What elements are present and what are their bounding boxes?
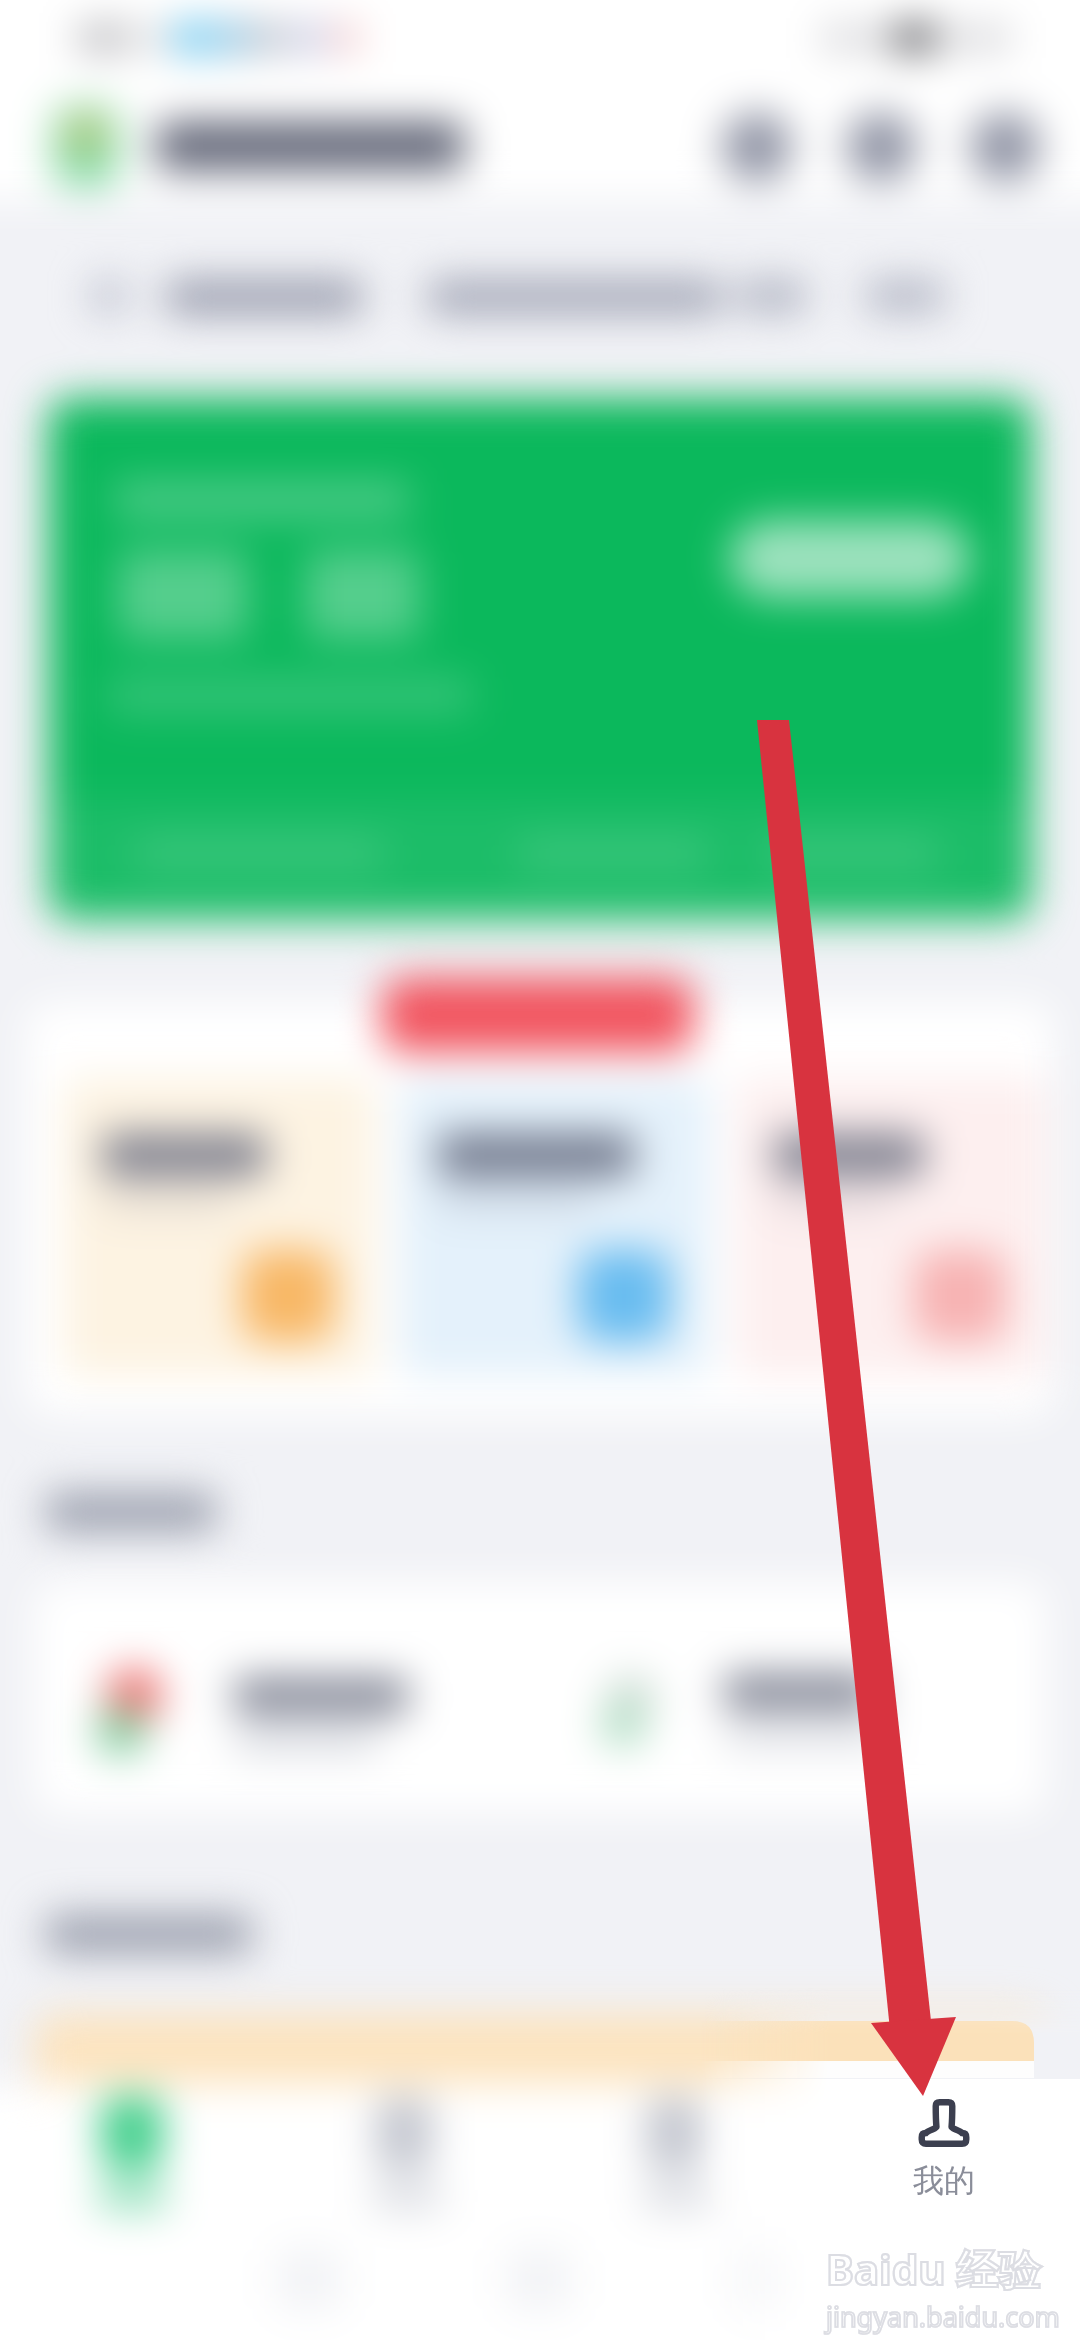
button[interactable]: 我的	[809, 2096, 1079, 2200]
button[interactable]: More	[970, 112, 1040, 182]
button[interactable]: Search	[722, 112, 792, 182]
button[interactable]: Scan	[846, 112, 916, 182]
button[interactable]: 消息	[572, 2084, 786, 2234]
button[interactable]: 首页	[27, 2084, 241, 2234]
button[interactable]: 服务	[302, 2084, 516, 2234]
staticText: 我的	[913, 2161, 975, 2200]
staticText: Baidu 经验	[826, 2240, 1041, 2297]
staticText: jingyan.baidu.com	[826, 2298, 1060, 2335]
